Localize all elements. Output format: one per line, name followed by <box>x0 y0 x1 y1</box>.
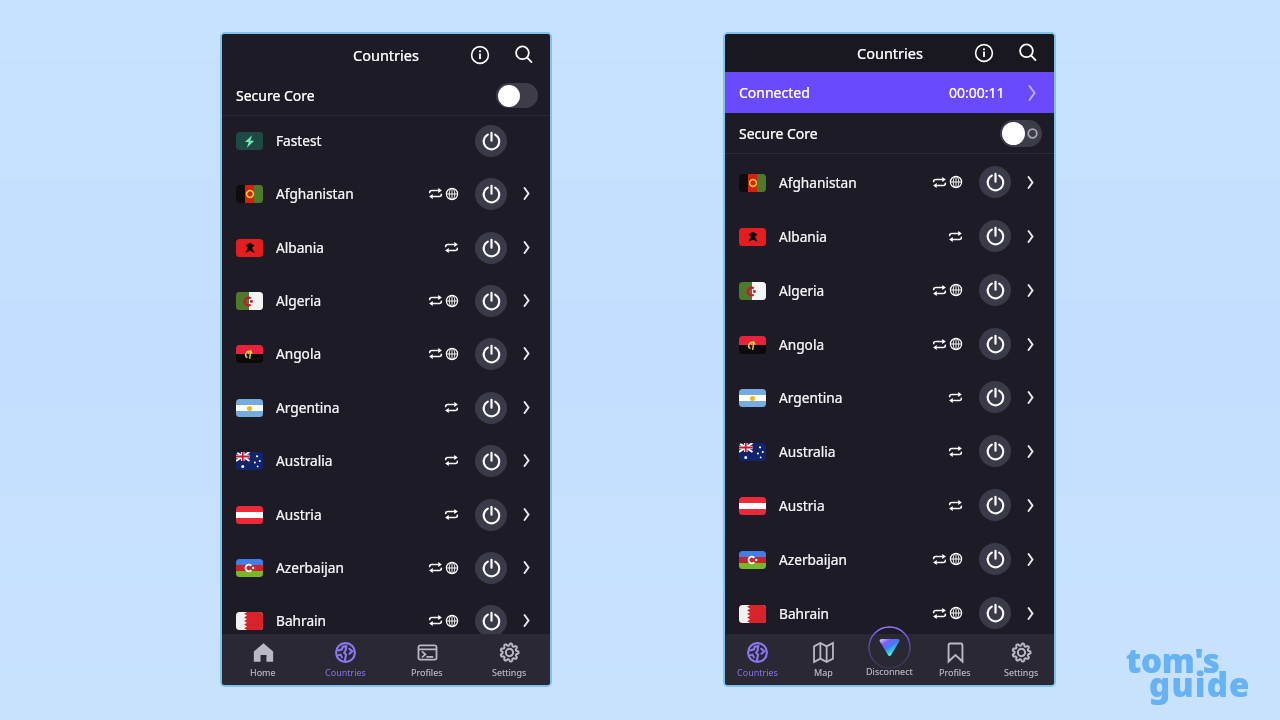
button[interactable]: Globe <box>949 175 963 189</box>
button[interactable]: Globe <box>949 337 963 351</box>
button[interactable]: Secure Core <box>222 75 550 115</box>
button[interactable]: Details <box>1019 171 1042 194</box>
button[interactable]: Disconnect <box>856 634 922 685</box>
button[interactable]: Tor <box>949 499 962 512</box>
button[interactable]: Connect <box>979 489 1011 521</box>
button[interactable]: Details <box>515 556 538 579</box>
button[interactable]: Angola <box>222 327 550 380</box>
button[interactable]: Argentina <box>725 370 1054 424</box>
button[interactable]: Details <box>1019 494 1042 517</box>
button[interactable]: Profiles <box>922 634 988 685</box>
button[interactable]: Connect <box>475 125 507 157</box>
button[interactable]: Connect <box>475 605 507 637</box>
button[interactable]: Tor <box>933 607 946 620</box>
button[interactable]: Tor <box>445 401 458 414</box>
button[interactable]: Australia <box>222 434 550 487</box>
button[interactable]: Globe <box>445 187 459 201</box>
button[interactable]: Globe <box>445 347 459 361</box>
button[interactable]: Connect <box>475 445 507 477</box>
button[interactable]: Tor <box>933 553 946 566</box>
button[interactable]: Globe <box>949 283 963 297</box>
button[interactable]: Tor <box>949 230 962 243</box>
button[interactable]: Argentina <box>222 381 550 434</box>
button[interactable]: Details <box>515 289 538 312</box>
button[interactable]: Connect <box>979 274 1011 306</box>
button[interactable]: Fastest <box>222 114 550 167</box>
button[interactable]: Map <box>790 634 856 685</box>
button[interactable]: Tor <box>949 391 962 404</box>
button[interactable]: Connect <box>475 499 507 531</box>
button[interactable]: Connect <box>979 543 1011 575</box>
button[interactable]: Tor <box>445 454 458 467</box>
button[interactable]: Australia <box>725 424 1054 478</box>
button[interactable]: Tor <box>949 445 962 458</box>
button[interactable]: Connected <box>725 72 1054 113</box>
button[interactable]: Details <box>515 396 538 419</box>
button[interactable]: Afghanistan <box>222 167 550 220</box>
button[interactable]: Tor <box>445 508 458 521</box>
button[interactable]: Albania <box>222 221 550 274</box>
button[interactable]: Tor <box>445 241 458 254</box>
button[interactable]: Globe <box>445 294 459 308</box>
button[interactable]: Details <box>515 182 538 205</box>
button[interactable]: Details <box>1019 386 1042 409</box>
button[interactable]: Tor <box>933 176 946 189</box>
button[interactable]: Algeria <box>725 263 1054 317</box>
button[interactable]: Details <box>1019 548 1042 571</box>
button[interactable]: Details <box>515 503 538 526</box>
button[interactable]: Austria <box>725 478 1054 532</box>
button[interactable]: Bahrain <box>725 586 1054 640</box>
button[interactable]: Angola <box>725 317 1054 371</box>
button[interactable]: Details <box>515 236 538 259</box>
button[interactable]: Bahrain <box>222 594 550 647</box>
button[interactable]: Countries <box>304 634 386 685</box>
button[interactable]: Connect <box>475 392 507 424</box>
button[interactable]: Details <box>515 342 538 365</box>
button[interactable]: Azerbaijan <box>222 541 550 594</box>
button[interactable]: Details <box>1019 602 1042 625</box>
button[interactable]: Connect <box>475 552 507 584</box>
button[interactable]: Connect <box>979 166 1011 198</box>
button[interactable]: Details <box>1019 333 1042 356</box>
button[interactable]: Info <box>465 40 495 70</box>
button[interactable]: Globe <box>949 552 963 566</box>
button[interactable]: Profiles <box>386 634 468 685</box>
button[interactable]: Info <box>969 38 999 68</box>
button[interactable]: Connect <box>979 435 1011 467</box>
button[interactable]: Details <box>1019 225 1042 248</box>
button[interactable]: Search <box>509 40 539 70</box>
button[interactable]: Afghanistan <box>725 155 1054 209</box>
button[interactable]: Details <box>515 449 538 472</box>
button[interactable]: Tor <box>429 614 442 627</box>
button[interactable]: Countries <box>725 634 790 685</box>
button[interactable]: Albania <box>725 209 1054 263</box>
button[interactable]: Connect <box>475 178 507 210</box>
button[interactable]: Tor <box>933 284 946 297</box>
button[interactable]: Details <box>1019 440 1042 463</box>
button[interactable]: Algeria <box>222 274 550 327</box>
button[interactable]: Tor <box>429 294 442 307</box>
button[interactable]: Settings <box>988 634 1054 685</box>
button[interactable]: Connect <box>475 285 507 317</box>
button[interactable]: Details <box>1019 279 1042 302</box>
button[interactable]: Austria <box>222 488 550 541</box>
button[interactable]: Settings <box>468 634 550 685</box>
button[interactable]: Connect <box>979 220 1011 252</box>
button[interactable]: Home <box>222 634 304 685</box>
button[interactable]: Search <box>1013 38 1043 68</box>
button[interactable]: Connect <box>979 381 1011 413</box>
button[interactable]: Connect <box>475 338 507 370</box>
button[interactable]: Details <box>515 609 538 632</box>
button[interactable]: Azerbaijan <box>725 532 1054 586</box>
button[interactable]: Globe <box>949 606 963 620</box>
button[interactable]: Tor <box>429 187 442 200</box>
button[interactable]: Tor <box>429 561 442 574</box>
button[interactable]: Tor <box>429 347 442 360</box>
button[interactable]: Tor <box>933 338 946 351</box>
button[interactable]: Globe <box>445 561 459 575</box>
button[interactable]: Connect <box>979 328 1011 360</box>
button[interactable]: Globe <box>445 614 459 628</box>
button[interactable]: Connect <box>979 597 1011 629</box>
button[interactable]: Secure Core <box>725 113 1054 153</box>
button[interactable]: Connect <box>475 232 507 264</box>
